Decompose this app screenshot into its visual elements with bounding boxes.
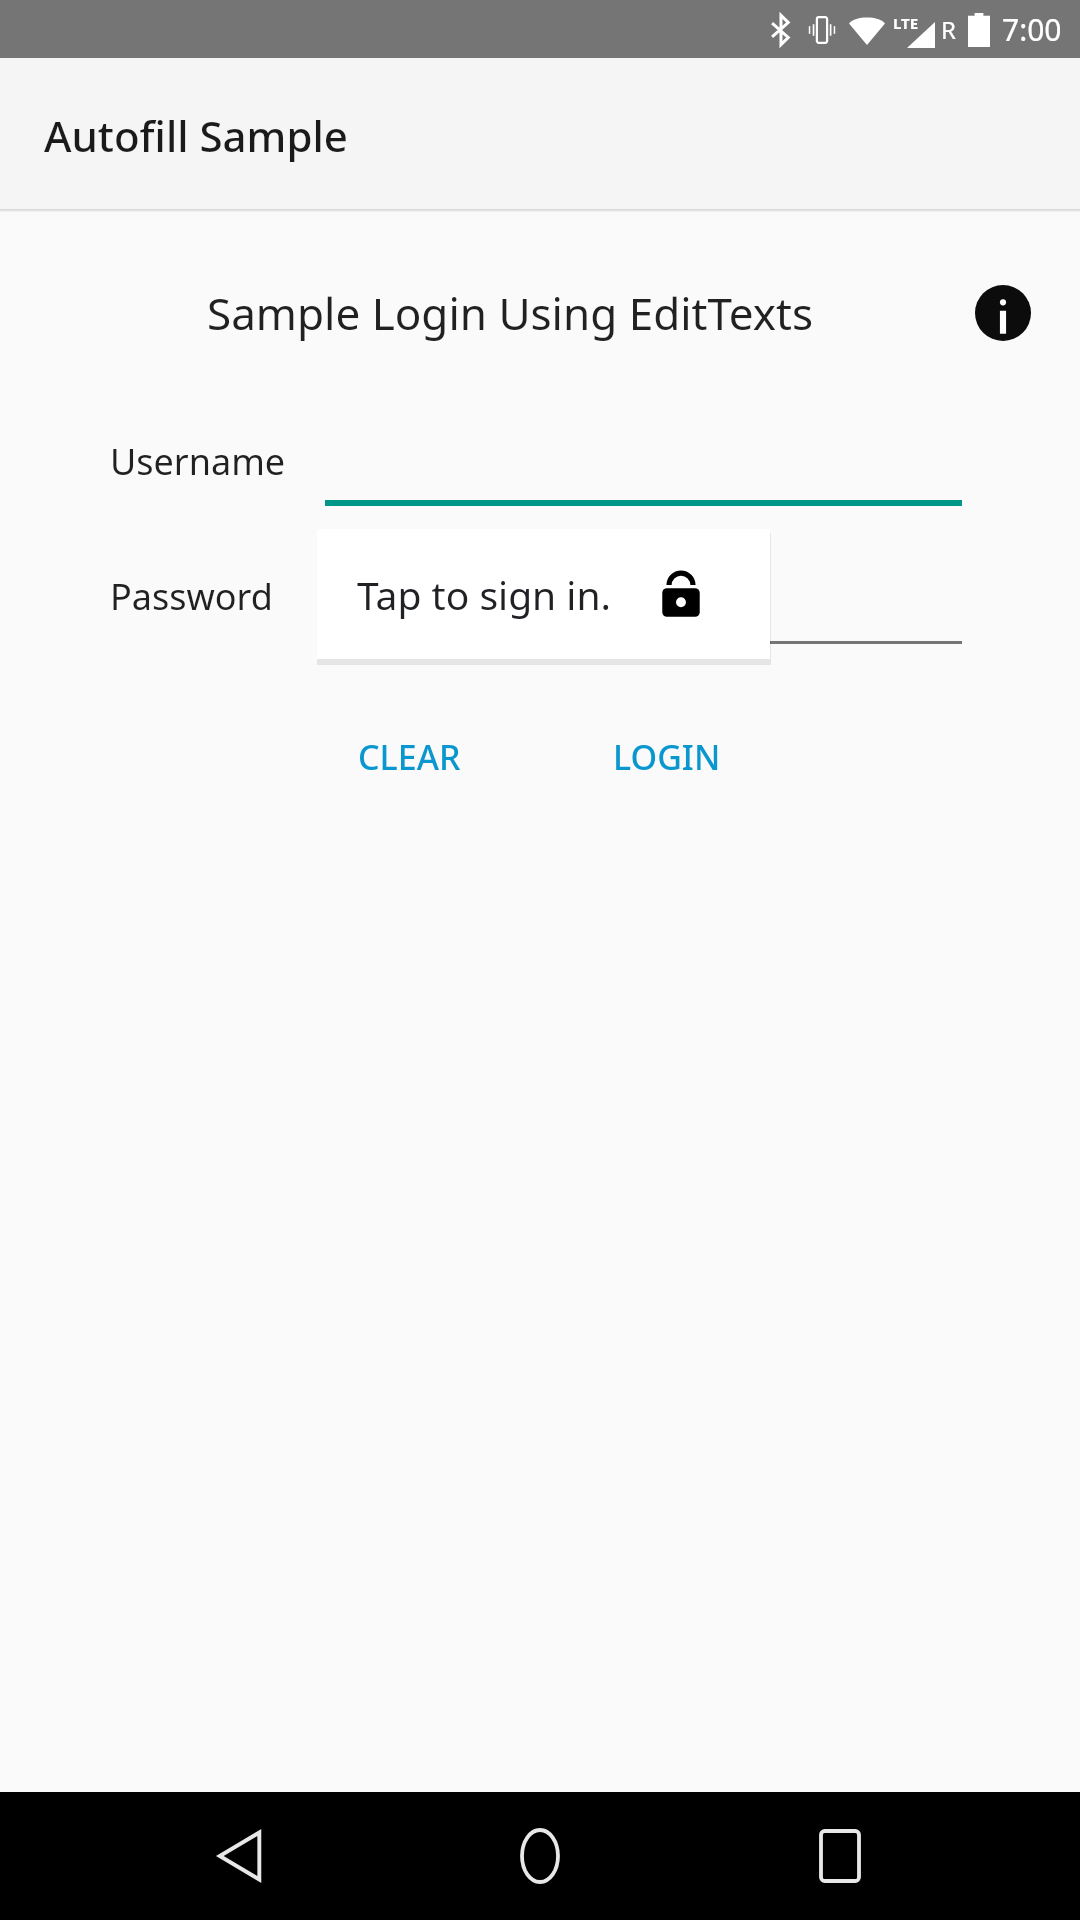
- button[interactable]: Home: [480, 1796, 600, 1916]
- staticText: CLEAR: [358, 734, 461, 780]
- button[interactable]: Info: [969, 279, 1037, 347]
- staticText: Sample Login Using EditTexts: [115, 283, 905, 343]
- staticText: Username: [110, 437, 286, 486]
- staticText: Autofill Sample: [44, 107, 348, 164]
- staticText: R: [941, 13, 956, 46]
- staticText: Password: [110, 572, 273, 621]
- button[interactable]: Back: [180, 1796, 300, 1916]
- staticText: LOGIN: [613, 734, 721, 780]
- button[interactable]: Recent apps: [780, 1796, 900, 1916]
- button[interactable]: LOGIN: [585, 718, 749, 796]
- button[interactable]: Tap to sign in.: [317, 529, 770, 659]
- staticText: Tap to sign in.: [357, 568, 611, 621]
- button[interactable]: CLEAR: [330, 718, 489, 796]
- staticText: LTE: [893, 13, 919, 33]
- staticText: 7:00: [1002, 9, 1062, 50]
